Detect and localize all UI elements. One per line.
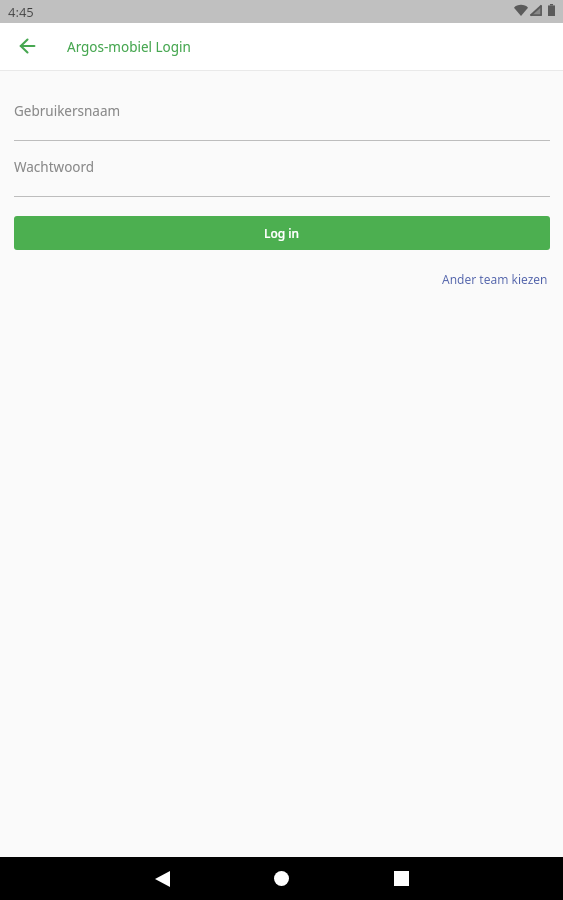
staticText: Ander team kiezen <box>442 271 548 287</box>
staticText: Wachtwoord <box>14 158 95 176</box>
button[interactable]: Back <box>140 857 184 900</box>
button[interactable]: Wachtwoord <box>14 150 550 197</box>
button[interactable]: Home <box>259 857 303 900</box>
button[interactable]: Navigate up <box>5 25 49 69</box>
staticText: Argos-mobiel Login <box>67 38 191 56</box>
staticText: 4:45 <box>8 3 34 21</box>
button[interactable]: Ander team kiezen <box>441 267 549 291</box>
staticText: Gebruikersnaam <box>14 102 121 120</box>
button[interactable]: Recent apps <box>379 857 423 900</box>
staticText: Log in <box>264 225 300 241</box>
button[interactable]: Log in <box>14 216 550 250</box>
button[interactable]: Gebruikersnaam <box>14 94 550 141</box>
